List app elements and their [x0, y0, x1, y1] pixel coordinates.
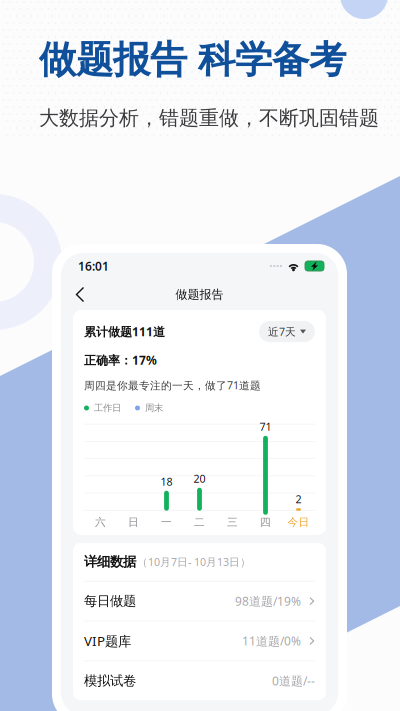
staticText: 二	[194, 516, 205, 529]
staticText: 周四是你最专注的一天，做了71道题	[84, 378, 261, 392]
staticText: 16:01	[78, 258, 109, 274]
staticText: VIP题库	[84, 632, 131, 650]
staticText: 近7天	[268, 324, 296, 339]
staticText: 20	[193, 472, 205, 486]
staticText: 周末	[145, 402, 163, 414]
staticText: 日	[128, 516, 139, 529]
staticText: 11道题/0%	[242, 633, 301, 649]
staticText: 今日	[287, 516, 309, 529]
staticText: 2	[295, 492, 301, 506]
button[interactable]: VIP题库	[73, 621, 326, 660]
button[interactable]: Back	[61, 279, 99, 309]
staticText: 六	[95, 516, 106, 529]
staticText: 0道题/--	[272, 673, 315, 689]
staticText: 正确率：17%	[84, 352, 157, 368]
button[interactable]: 近7天	[259, 321, 315, 342]
staticText: 一	[161, 516, 172, 529]
button[interactable]: 每日做题	[73, 582, 326, 621]
staticText: 详细数据	[84, 554, 136, 570]
staticText: 每日做题	[84, 593, 136, 609]
staticText: 工作日	[94, 402, 121, 414]
staticText: 模拟试卷	[84, 672, 136, 689]
staticText: 大数据分析，错题重做，不断巩固错题	[39, 106, 379, 130]
staticText: 累计做题111道	[84, 324, 165, 339]
staticText: 做题报告	[175, 287, 223, 302]
staticText: （10月7日- 10月13日）	[137, 555, 251, 569]
staticText: 做题报告 科学备考	[39, 37, 346, 83]
staticText: 98道题/19%	[235, 593, 301, 609]
staticText: 18	[160, 475, 172, 489]
staticText: 四	[260, 516, 271, 529]
staticText: 71	[259, 420, 271, 434]
staticText: 三	[227, 516, 238, 529]
button[interactable]: 模拟试卷	[73, 661, 326, 700]
